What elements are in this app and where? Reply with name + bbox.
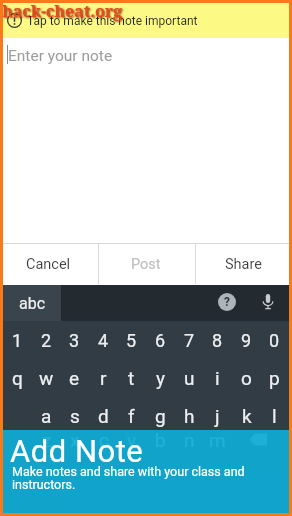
button[interactable]: y bbox=[146, 359, 175, 397]
button[interactable]: i bbox=[203, 359, 232, 397]
button[interactable]: g bbox=[146, 397, 175, 435]
button[interactable]: l bbox=[260, 397, 289, 435]
button[interactable]: f bbox=[117, 397, 146, 435]
staticText: Make notes and share with your class and… bbox=[12, 464, 245, 492]
button[interactable]: m bbox=[203, 421, 232, 459]
staticText: p bbox=[269, 367, 280, 389]
staticText: Share bbox=[225, 256, 262, 273]
staticText: r bbox=[100, 367, 107, 389]
staticText: 6 bbox=[155, 330, 166, 351]
staticText: h bbox=[184, 405, 195, 427]
button[interactable]: 8 bbox=[203, 321, 232, 359]
button[interactable]: Cancel bbox=[0, 244, 97, 284]
staticText: 7 bbox=[184, 330, 195, 351]
button[interactable]: 7 bbox=[175, 321, 204, 359]
staticText: 8 bbox=[212, 330, 223, 351]
staticText: j bbox=[215, 405, 220, 427]
staticText: g bbox=[155, 405, 166, 427]
button[interactable]: x bbox=[60, 421, 89, 459]
button[interactable] bbox=[0, 0, 292, 38]
staticText: u bbox=[184, 367, 195, 389]
button[interactable]: Share bbox=[195, 244, 292, 284]
staticText: o bbox=[241, 367, 252, 389]
button[interactable]: v bbox=[117, 421, 146, 459]
staticText: 5 bbox=[126, 330, 137, 351]
staticText: Cancel bbox=[26, 256, 71, 273]
staticText: hack-cheat.org bbox=[2, 0, 123, 22]
staticText: 2 bbox=[41, 330, 52, 351]
button[interactable]: k bbox=[232, 397, 261, 435]
staticText: e bbox=[69, 367, 80, 389]
staticText: 0 bbox=[269, 330, 280, 351]
button[interactable]: e bbox=[60, 359, 89, 397]
button[interactable]: w bbox=[32, 359, 61, 397]
button[interactable]: 1 bbox=[3, 321, 32, 359]
staticText: 9 bbox=[241, 330, 252, 351]
staticText: x bbox=[70, 429, 80, 451]
button[interactable]: h bbox=[175, 397, 204, 435]
staticText: 4 bbox=[98, 330, 109, 351]
button[interactable]: 3 bbox=[60, 321, 89, 359]
staticText: s bbox=[70, 405, 80, 427]
button[interactable]: Post bbox=[98, 244, 194, 284]
button[interactable]: t bbox=[117, 359, 146, 397]
staticText: a bbox=[41, 405, 52, 427]
button[interactable]: 2 bbox=[32, 321, 61, 359]
staticText: v bbox=[127, 429, 137, 451]
staticText: l bbox=[272, 405, 277, 427]
button[interactable]: 5 bbox=[117, 321, 146, 359]
staticText: 1 bbox=[12, 330, 23, 351]
button[interactable]: p bbox=[260, 359, 289, 397]
staticText: w bbox=[39, 367, 54, 389]
staticText: z bbox=[42, 429, 52, 451]
button[interactable]: r bbox=[89, 359, 118, 397]
staticText: n bbox=[184, 429, 195, 451]
staticText: Post bbox=[131, 256, 161, 273]
button[interactable]: c bbox=[89, 421, 118, 459]
staticText: abc bbox=[19, 294, 46, 313]
staticText: k bbox=[242, 405, 252, 427]
button[interactable]: j bbox=[203, 397, 232, 435]
staticText: i bbox=[215, 367, 220, 389]
button[interactable]: s bbox=[60, 397, 89, 435]
button[interactable]: z bbox=[32, 421, 61, 459]
button[interactable] bbox=[0, 430, 292, 516]
button[interactable]: abc bbox=[3, 285, 61, 321]
staticText: q bbox=[12, 367, 23, 389]
button[interactable]: 9 bbox=[232, 321, 261, 359]
staticText: f bbox=[128, 405, 135, 427]
button[interactable]: ? bbox=[217, 292, 237, 312]
staticText: d bbox=[98, 405, 109, 427]
staticText: b bbox=[155, 429, 166, 451]
staticText: Enter your note bbox=[8, 47, 113, 65]
button[interactable]: b bbox=[146, 421, 175, 459]
button[interactable]: u bbox=[175, 359, 204, 397]
button[interactable]: o bbox=[232, 359, 261, 397]
button[interactable]: n bbox=[175, 421, 204, 459]
button[interactable]: 4 bbox=[89, 321, 118, 359]
button[interactable]: d bbox=[89, 397, 118, 435]
staticText: c bbox=[99, 429, 109, 451]
staticText: m bbox=[209, 429, 226, 451]
button[interactable]: a bbox=[32, 397, 61, 435]
button[interactable]: 0 bbox=[260, 321, 289, 359]
staticText: Add Note bbox=[10, 433, 144, 469]
staticText: ? bbox=[224, 295, 230, 309]
button[interactable]: q bbox=[3, 359, 32, 397]
staticText: y bbox=[156, 367, 165, 389]
button[interactable] bbox=[260, 292, 276, 312]
staticText: t bbox=[128, 367, 135, 389]
button[interactable]: 6 bbox=[146, 321, 175, 359]
staticText: Tap to make this note important bbox=[27, 14, 198, 28]
staticText: 3 bbox=[69, 330, 80, 351]
